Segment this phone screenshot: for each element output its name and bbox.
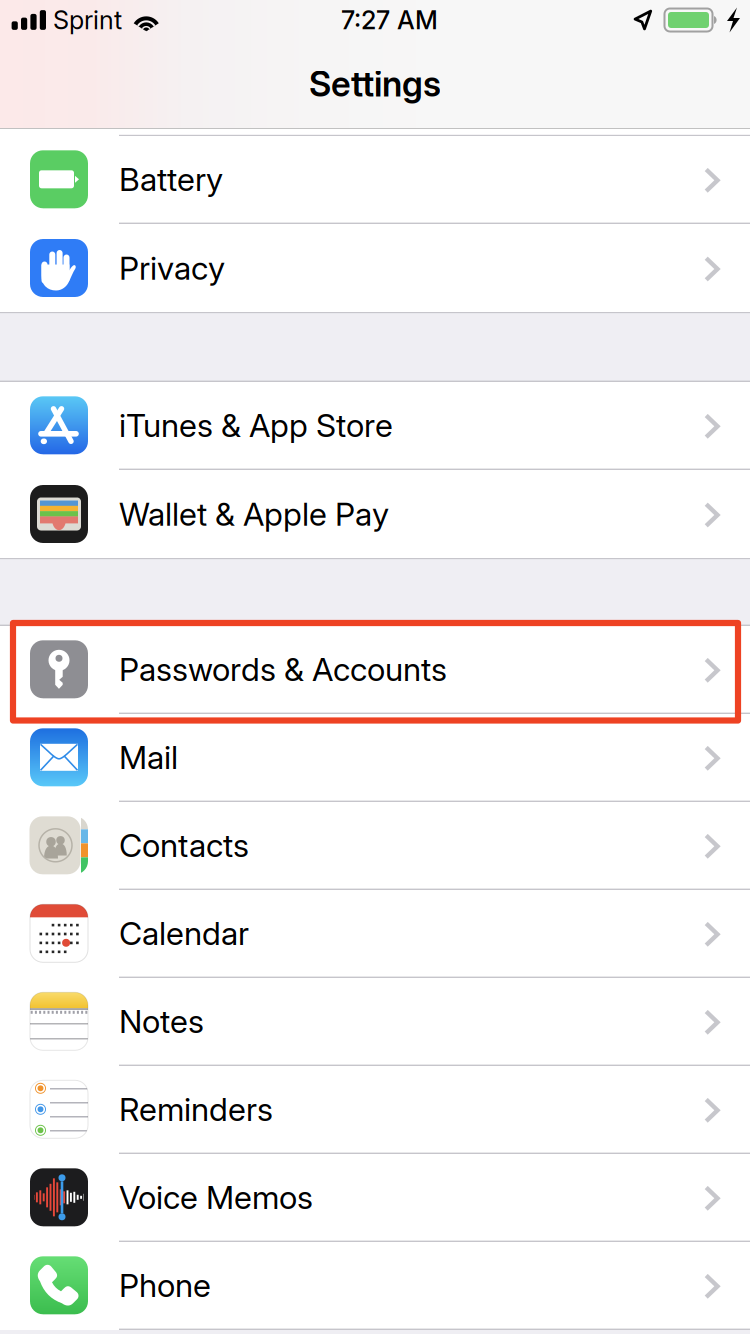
button[interactable]: Notes — [0, 978, 750, 1066]
button[interactable]: Reminders — [0, 1066, 750, 1154]
button[interactable]: Passwords & Accounts — [0, 626, 750, 714]
staticText: Mail — [119, 738, 178, 777]
staticText: Notes — [119, 1002, 204, 1041]
staticText: Wallet & Apple Pay — [119, 495, 389, 533]
staticText: Contacts — [119, 826, 249, 865]
staticText: 7:27 AM — [341, 5, 438, 35]
button[interactable]: Battery — [0, 136, 750, 224]
button[interactable]: iTunes & App Store — [0, 382, 750, 470]
button[interactable]: Mail — [0, 714, 750, 802]
staticText: Battery — [119, 160, 223, 199]
staticText: Sprint — [53, 5, 122, 35]
button[interactable]: Phone — [0, 1242, 750, 1330]
button[interactable]: Voice Memos — [0, 1154, 750, 1242]
staticText: Passwords & Accounts — [119, 650, 447, 689]
staticText: Phone — [119, 1266, 211, 1305]
staticText: Reminders — [119, 1090, 273, 1129]
staticText: Voice Memos — [119, 1178, 313, 1217]
staticText: Privacy — [119, 249, 225, 287]
staticText: Settings — [309, 63, 441, 105]
button[interactable]: Calendar — [0, 890, 750, 978]
button[interactable]: Contacts — [0, 802, 750, 890]
button[interactable]: Wallet & Apple Pay — [0, 470, 750, 558]
button[interactable]: Privacy — [0, 224, 750, 312]
staticText: iTunes & App Store — [119, 406, 393, 445]
staticText: Calendar — [119, 914, 249, 953]
